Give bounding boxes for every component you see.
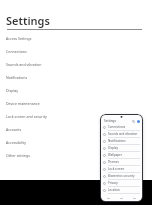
button[interactable]: Themes (103, 159, 140, 166)
staticText: Sounds and vibration (6, 62, 42, 67)
button[interactable]: Access Settings (0, 32, 152, 45)
button[interactable]: Privacy (103, 180, 140, 187)
button[interactable]: Wallpaper (103, 152, 140, 159)
staticText: Other settings (6, 153, 30, 158)
button[interactable]: Display (103, 145, 140, 152)
staticText: Notifications (6, 75, 28, 80)
staticText: Lock screen and security (6, 114, 47, 119)
staticText: Device maintenance (6, 101, 40, 106)
button[interactable]: Lock screen and security (0, 110, 152, 123)
button[interactable]: Display (0, 84, 152, 97)
staticText: Accessibility (6, 140, 27, 145)
staticText: Notifications (108, 139, 126, 143)
button[interactable]: Connections (0, 45, 152, 58)
button[interactable]: Connections (103, 124, 140, 131)
staticText: Biometrics security (108, 174, 135, 178)
staticText: Location (108, 188, 120, 192)
staticText: Display (6, 88, 19, 93)
button[interactable]: Sounds and vibration (103, 131, 140, 138)
button[interactable]: Accessibility (0, 136, 152, 149)
button[interactable]: Lock screen (103, 166, 140, 173)
staticText: Themes (108, 160, 119, 164)
button[interactable]: Accounts (0, 123, 152, 136)
button[interactable]: Device maintenance (0, 97, 152, 110)
staticText: Lock screen (108, 167, 125, 171)
button[interactable]: Location (103, 187, 140, 194)
other: Account (137, 120, 140, 123)
staticText: Access Settings (6, 36, 32, 41)
staticText: Wallpaper (108, 153, 122, 157)
staticText: Sounds and vibration (108, 132, 138, 136)
staticText: Settings (6, 13, 50, 28)
staticText: Connections (6, 49, 27, 54)
button[interactable]: Sounds and vibration (0, 58, 152, 71)
staticText: Privacy (108, 181, 118, 185)
button[interactable]: Biometrics security (103, 173, 140, 180)
staticText: Display (108, 146, 119, 150)
staticText: Accounts (6, 127, 22, 132)
button[interactable]: Notifications (103, 138, 140, 145)
button[interactable]: Notifications (0, 71, 152, 84)
staticText: Connections (108, 125, 126, 129)
other: Search (132, 120, 135, 123)
button[interactable]: Other settings (0, 149, 152, 162)
staticText: Settings (104, 119, 117, 123)
